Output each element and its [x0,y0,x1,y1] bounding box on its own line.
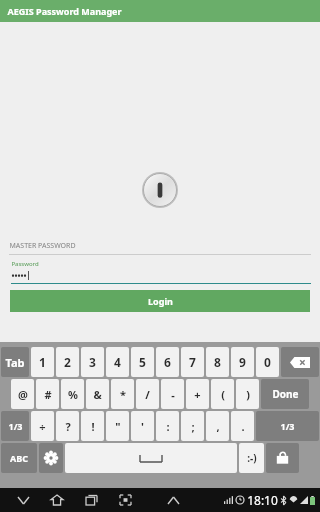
staticText: ÷ [39,419,46,434]
staticText: ? [65,419,71,434]
staticText: 18:10 [247,492,278,508]
staticText: ••••• [11,270,27,281]
staticText: 8 [214,354,221,370]
staticText: + [194,387,201,402]
button[interactable]: ' [131,411,154,441]
staticText: / [145,387,150,402]
button[interactable]: 7 [181,347,204,377]
button[interactable]: % [61,379,84,409]
button[interactable]: 1 [31,347,54,377]
button[interactable]: # [36,379,59,409]
button[interactable]: 8 [206,347,229,377]
button[interactable]: 2 [56,347,79,377]
staticText: 7 [189,354,196,370]
staticText: - [171,387,175,402]
staticText: 9 [239,354,246,370]
button[interactable]: * [111,379,134,409]
button[interactable]: ( [211,379,234,409]
button[interactable]: 6 [156,347,179,377]
staticText: Login [148,295,173,307]
button[interactable]: , [206,411,229,441]
button[interactable]: 4 [106,347,129,377]
staticText: 1 [39,354,46,370]
button[interactable]: Expand [160,490,186,510]
button[interactable]: - [161,379,184,409]
staticText: 6 [164,354,171,370]
staticText: 5 [139,354,146,370]
staticText: 1/3 [8,420,23,432]
staticText: 0 [264,354,271,370]
button[interactable]: ABC [1,443,37,473]
staticText: 4 [114,354,121,370]
button[interactable]: Tab [1,347,29,377]
button[interactable]: . [231,411,254,441]
button[interactable]: ; [181,411,204,441]
button[interactable]: 1/3 [256,411,319,441]
staticText: ) [246,387,250,402]
button[interactable]: 3 [81,347,104,377]
button[interactable]: 1/3 [1,411,29,441]
button[interactable]: Backspace [281,347,319,377]
button[interactable]: Done [261,379,309,409]
button[interactable]: & [86,379,109,409]
staticText: # [44,387,52,402]
button[interactable]: Login [10,290,310,312]
staticText: 2 [64,354,71,370]
staticText: & [93,387,102,402]
button[interactable]: Attach [266,443,299,473]
staticText: % [68,387,78,402]
staticText: ABC [10,452,28,464]
staticText: @ [18,387,28,402]
staticText: ' [141,419,144,434]
button[interactable]: Input settings [39,443,63,473]
staticText: , [216,419,220,434]
staticText: 3 [89,354,96,370]
button[interactable]: Screenshot [112,490,138,510]
button[interactable]: 5 [131,347,154,377]
button[interactable]: ! [81,411,104,441]
staticText: 1/3 [280,420,295,432]
button[interactable]: Space [65,443,237,473]
staticText: Done [272,387,299,401]
button[interactable]: ÷ [31,411,54,441]
button[interactable]: :-) [239,443,264,473]
staticText: :-) [247,451,257,465]
button[interactable]: Hide keyboard [10,490,36,510]
button[interactable]: / [136,379,159,409]
staticText: Tab [5,355,25,370]
button[interactable]: Home [44,490,70,510]
staticText: : [166,419,170,434]
staticText: Password [11,260,39,268]
staticText: ! [91,419,95,434]
button[interactable]: : [156,411,179,441]
button[interactable]: ? [56,411,79,441]
staticText: * [120,387,126,402]
button[interactable]: 9 [231,347,254,377]
staticText: AEGIS Password Manager [7,5,122,17]
staticText: ( [221,387,225,402]
staticText: MASTER PASSWORD [9,241,76,251]
button[interactable]: " [106,411,129,441]
button[interactable]: ) [236,379,259,409]
button[interactable]: 0 [256,347,279,377]
button[interactable]: @ [11,379,34,409]
staticText: ; [191,419,195,434]
staticText: . [241,419,245,434]
button[interactable]: + [186,379,209,409]
button[interactable]: Recents [78,490,104,510]
staticText: " [115,419,121,434]
